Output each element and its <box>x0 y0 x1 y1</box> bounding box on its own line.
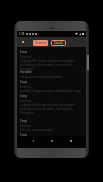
staticText: • drag of ratio fields from gesture <box>20 75 63 79</box>
staticText: Selection to make a thing so it takes so… <box>20 85 82 93</box>
staticText: Overview <box>35 41 47 45</box>
button[interactable]: Back <box>29 137 36 144</box>
staticText: Crop <box>20 119 27 123</box>
staticText: Details <box>54 41 63 45</box>
staticText: Crop <box>20 133 27 137</box>
staticText: Variable <box>20 70 32 74</box>
staticText: Crop <box>20 94 27 98</box>
button[interactable]: Home <box>48 137 55 144</box>
staticText: Crop <box>20 50 27 54</box>
staticText: Selection ratio of a crop area made <box>20 124 52 132</box>
staticText: Crop <box>20 80 27 84</box>
button[interactable]: Details <box>51 40 66 46</box>
button[interactable]: Overview <box>33 40 48 46</box>
button[interactable]: Navigate up <box>20 39 26 45</box>
staticText: 1:23 <box>19 32 25 36</box>
staticText: Selection • a photo fills a frame and mu… <box>20 55 75 71</box>
button[interactable]: Recent apps <box>67 137 74 144</box>
staticText: Selection • a photo fills a frame and mu… <box>20 99 75 115</box>
